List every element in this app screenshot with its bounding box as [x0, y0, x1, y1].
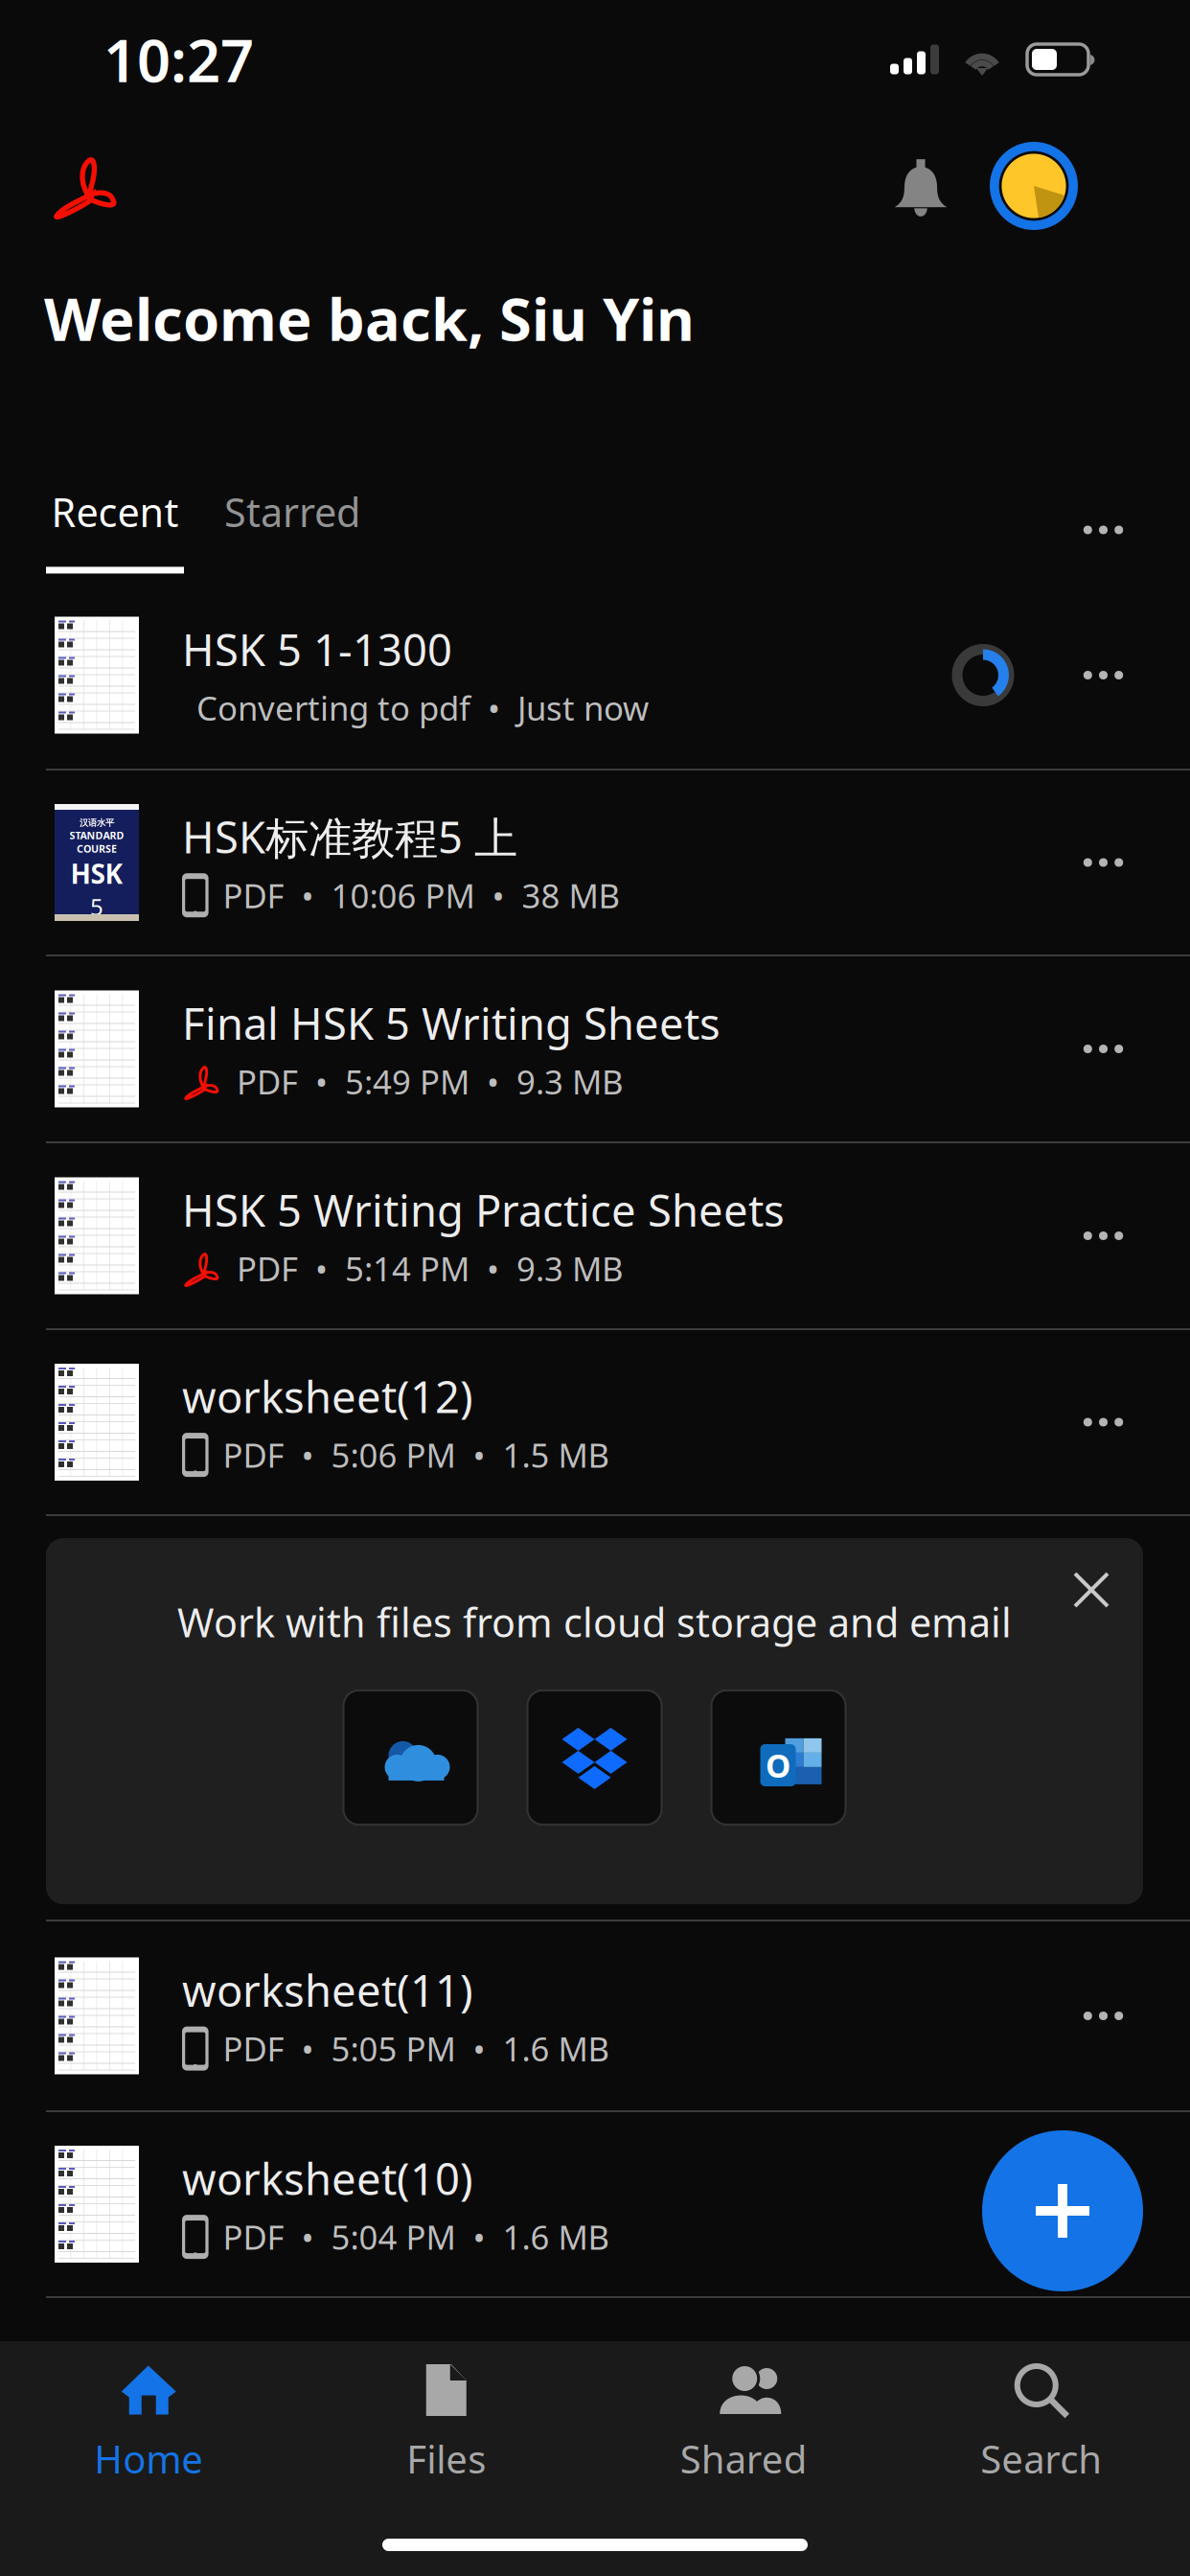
staticText: HSK 5 1-1300 [182, 620, 452, 678]
staticText: PDF • 10:06 PM • 38 MB [223, 873, 620, 917]
staticText: O [766, 1744, 790, 1787]
button[interactable]: Files [297, 2362, 595, 2496]
button[interactable]: Recent [0, 485, 203, 574]
staticText: HSK [70, 856, 123, 891]
button[interactable]: HSK 5 Writing Practice Sheets [0, 1143, 1190, 1328]
button[interactable]: Create [982, 2130, 1143, 2291]
staticText: 汉语水平 [80, 817, 114, 828]
button[interactable]: Notifications [849, 124, 962, 248]
button[interactable]: OneDrive [343, 1690, 478, 1825]
button[interactable]: Search [892, 2362, 1190, 2496]
staticText: Files [406, 2433, 486, 2484]
staticText: Shared [680, 2433, 808, 2484]
staticText: PDF • 5:05 PM • 1.6 MB [223, 2026, 610, 2071]
staticText: Home [94, 2433, 203, 2484]
staticText: worksheet(12) [182, 1367, 473, 1425]
button[interactable]: Dismiss [1045, 1544, 1137, 1636]
staticText: Search [980, 2433, 1102, 2484]
staticText: HSK标准教程5 上 [182, 808, 517, 866]
staticText: PDF • 5:06 PM • 1.5 MB [223, 1433, 610, 1477]
staticText: worksheet(11) [182, 1961, 473, 2019]
staticText: COURSE [77, 842, 117, 856]
staticText: PDF • 5:49 PM • 9.3 MB [237, 1060, 624, 1104]
staticText: worksheet(10) [182, 2149, 473, 2207]
button[interactable]: More options [1049, 526, 1190, 573]
staticText: 5 [90, 891, 103, 922]
button[interactable]: Shared [595, 2362, 892, 2496]
button[interactable]: Profile [962, 124, 1106, 248]
button[interactable]: Outlook [711, 1690, 846, 1825]
staticText: 10:27 [103, 20, 254, 98]
staticText: Starred [224, 485, 360, 538]
staticText: Final HSK 5 Writing Sheets [182, 994, 721, 1052]
button[interactable]: Starred [203, 485, 381, 574]
staticText: Work with files from cloud storage and e… [177, 1596, 1012, 1648]
staticText: Recent [51, 485, 179, 538]
staticText: STANDARD [69, 828, 124, 842]
button[interactable]: HSK 5 1-1300 [0, 582, 1190, 769]
staticText: HSK 5 Writing Practice Sheets [182, 1181, 785, 1239]
button[interactable]: Adobe Acrobat [0, 124, 148, 248]
button[interactable]: Dropbox [527, 1690, 662, 1825]
button[interactable]: worksheet(11) [0, 1921, 1190, 2110]
staticText: PDF • 5:04 PM • 1.6 MB [223, 2215, 610, 2259]
button[interactable]: 汉语水平 [0, 770, 1190, 954]
button[interactable]: worksheet(12) [0, 1330, 1190, 1514]
staticText: PDF • 5:14 PM • 9.3 MB [237, 1246, 624, 1290]
button[interactable]: Home [0, 2362, 297, 2496]
button[interactable]: worksheet(10) [0, 2112, 1190, 2296]
staticText: Converting to pdf • Just now [196, 686, 649, 730]
button[interactable]: Final HSK 5 Writing Sheets [0, 956, 1190, 1141]
staticText: Welcome back, Siu Yin [44, 279, 695, 357]
